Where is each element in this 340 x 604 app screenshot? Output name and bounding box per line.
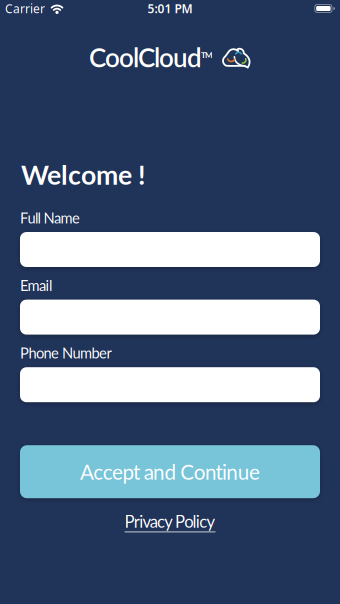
staticText: Email (20, 276, 52, 294)
button[interactable]: Accept and Continue (20, 445, 320, 498)
button[interactable]: Full Name (20, 232, 320, 267)
staticText: 5:01 PM (147, 0, 192, 16)
button[interactable]: Privacy Policy (125, 511, 215, 531)
staticText: Welcome ! (21, 158, 145, 190)
button[interactable]: Phone Number (20, 367, 320, 402)
staticText: Phone Number (20, 344, 111, 362)
button[interactable]: Email (20, 300, 320, 335)
staticText: Carrier (5, 0, 45, 16)
staticText: CoolCloudTM (89, 42, 213, 72)
staticText: Full Name (20, 209, 80, 226)
staticText: Privacy Policy (125, 511, 215, 531)
staticText: Accept and Continue (80, 459, 260, 484)
